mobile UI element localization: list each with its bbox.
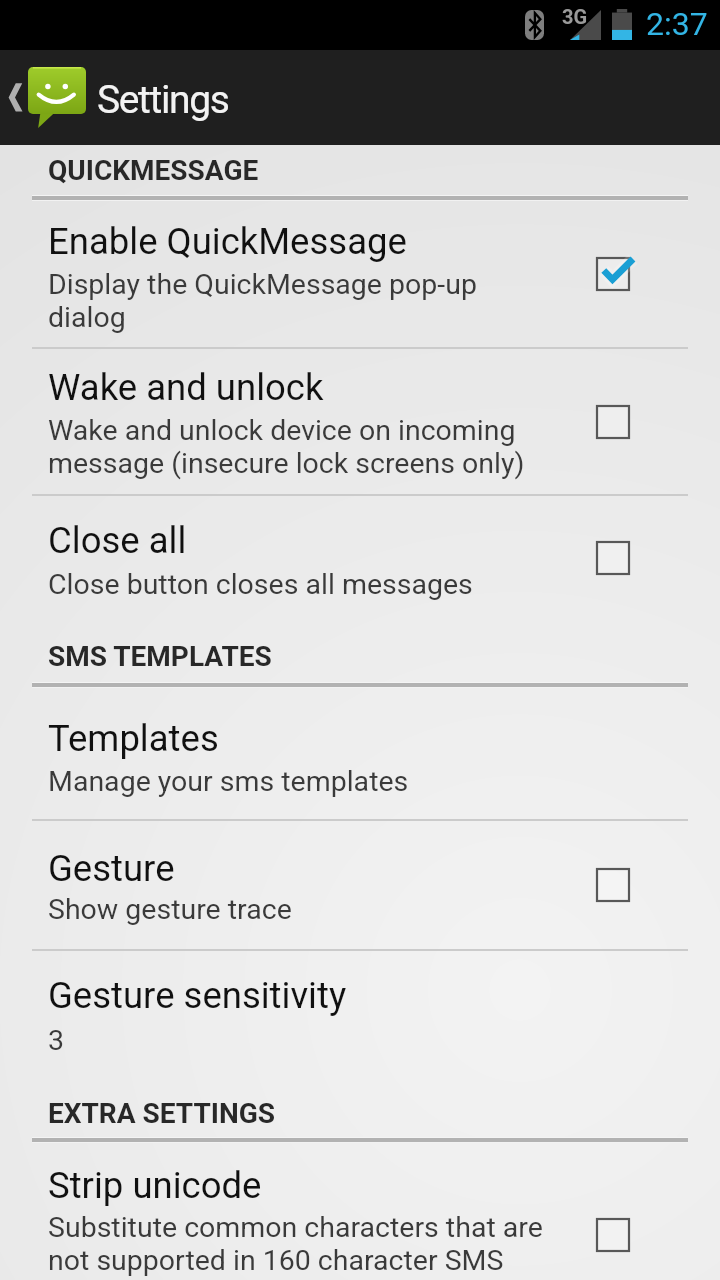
button[interactable]: Toggle Strip unicode — [573, 1195, 653, 1275]
staticText: Show gesture trace — [48, 893, 292, 926]
staticText: SMS TEMPLATES — [48, 640, 272, 673]
staticText: Display the QuickMessage pop-up — [48, 268, 477, 301]
button[interactable] — [0, 687, 720, 819]
button[interactable]: Toggle Wake and unlock — [573, 382, 653, 462]
button[interactable] — [0, 1143, 720, 1280]
button[interactable]: Navigate up — [0, 50, 245, 145]
staticText: Wake and unlock device on incoming — [48, 414, 516, 447]
staticText: Wake and unlock — [48, 366, 324, 409]
staticText: Close button closes all messages — [48, 568, 473, 601]
staticText: Gesture — [48, 847, 175, 890]
staticText: Manage your sms templates — [48, 765, 409, 798]
staticText: Enable QuickMessage — [48, 220, 407, 263]
staticText: Settings — [97, 77, 229, 123]
staticText: Strip unicode — [48, 1164, 262, 1207]
staticText: Templates — [48, 717, 219, 760]
staticText: 3 — [48, 1024, 65, 1057]
staticText: not supported in 160 character SMS — [48, 1244, 504, 1277]
staticText: Gesture sensitivity — [48, 974, 347, 1017]
staticText: Close all — [48, 519, 187, 562]
button[interactable] — [0, 200, 720, 347]
staticText: Substitute common characters that are — [48, 1211, 543, 1244]
staticText: 3G — [562, 5, 588, 28]
staticText: 2:37 — [646, 5, 708, 43]
button[interactable] — [0, 951, 720, 1080]
button[interactable]: Toggle Close all — [573, 518, 653, 598]
staticText: QUICKMESSAGE — [48, 154, 259, 187]
button[interactable] — [0, 349, 720, 494]
staticText: EXTRA SETTINGS — [48, 1097, 276, 1130]
staticText: dialog — [48, 301, 126, 334]
button[interactable]: Toggle Gesture — [573, 845, 653, 925]
button[interactable]: Toggle Enable QuickMessage — [573, 234, 653, 314]
button[interactable] — [0, 821, 720, 949]
staticText: message (insecure lock screens only) — [48, 447, 525, 480]
button[interactable] — [0, 496, 720, 620]
